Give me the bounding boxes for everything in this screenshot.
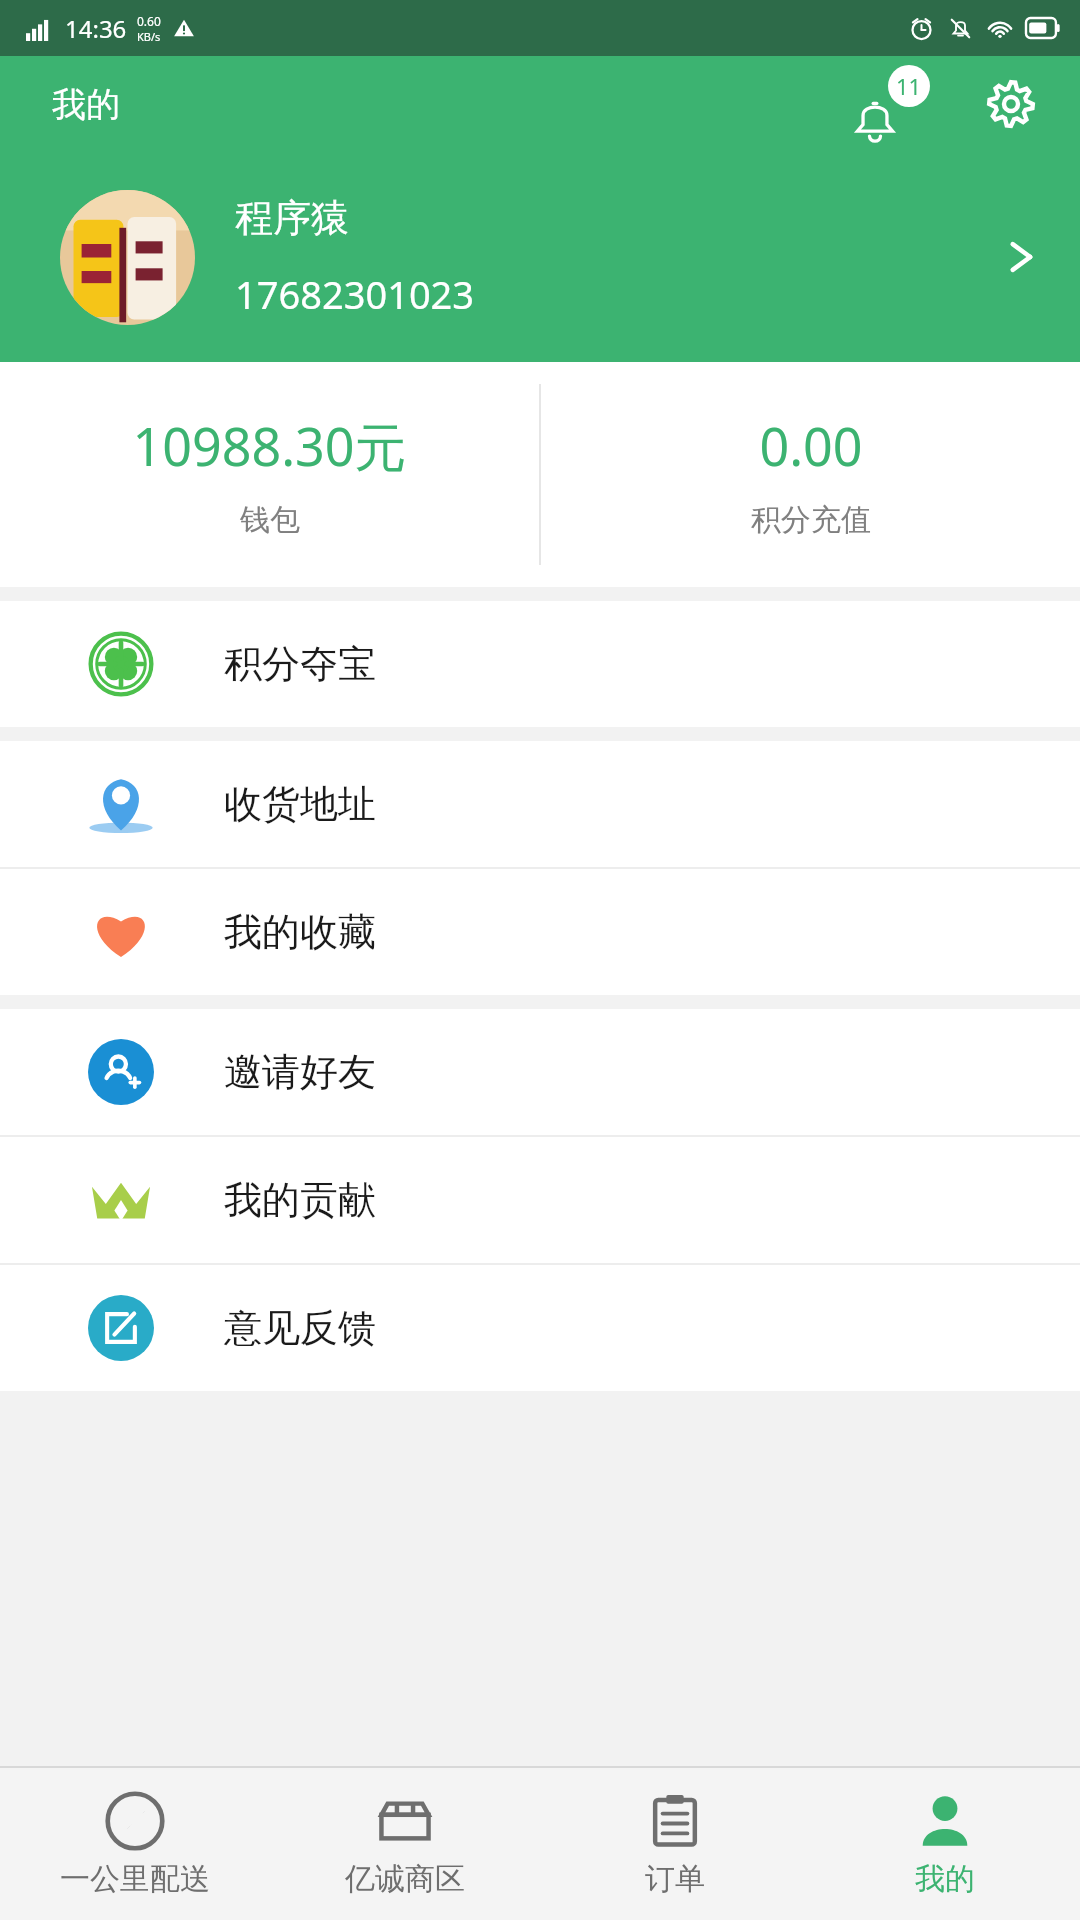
- staticText: 订单: [645, 1860, 705, 1898]
- staticText: KB/s: [137, 29, 161, 44]
- staticText: 11: [896, 71, 922, 101]
- staticText: 亿诚商区: [345, 1860, 465, 1898]
- button[interactable]: 我的收藏: [0, 869, 1080, 995]
- button[interactable]: 我的: [810, 1768, 1080, 1920]
- staticText: 钱包: [240, 501, 300, 539]
- button[interactable]: 邀请好友: [0, 1009, 1080, 1135]
- staticText: 0.60: [137, 13, 161, 29]
- button[interactable]: 10988.30元: [0, 362, 539, 587]
- button[interactable]: Notifications, 11 new: [852, 65, 930, 143]
- staticText: 17682301023: [235, 268, 475, 320]
- staticText: 程序猿: [235, 194, 349, 242]
- button[interactable]: 意见反馈: [0, 1265, 1080, 1391]
- staticText: 积分夺宝: [224, 640, 376, 688]
- staticText: 一公里配送: [60, 1860, 210, 1898]
- staticText: 14:36: [65, 12, 127, 45]
- button[interactable]: 积分夺宝: [0, 601, 1080, 727]
- button[interactable]: 订单: [540, 1768, 810, 1920]
- staticText: 邀请好友: [224, 1048, 376, 1096]
- staticText: 0.00: [759, 410, 863, 481]
- button[interactable]: 程序猿: [0, 152, 1080, 362]
- button[interactable]: 我的贡献: [0, 1137, 1080, 1263]
- button[interactable]: Settings: [982, 75, 1040, 133]
- staticText: 收货地址: [224, 780, 376, 828]
- staticText: 我的: [52, 83, 120, 126]
- button[interactable]: 0.00: [541, 362, 1080, 587]
- button[interactable]: 收货地址: [0, 741, 1080, 867]
- staticText: 我的贡献: [224, 1176, 376, 1224]
- staticText: 意见反馈: [224, 1304, 376, 1352]
- staticText: 我的: [915, 1860, 975, 1898]
- button[interactable]: 一公里配送: [0, 1768, 270, 1920]
- button[interactable]: 亿诚商区: [270, 1768, 540, 1920]
- staticText: 10988.30元: [132, 410, 407, 481]
- staticText: 积分充值: [751, 501, 871, 539]
- staticText: 我的收藏: [224, 908, 376, 956]
